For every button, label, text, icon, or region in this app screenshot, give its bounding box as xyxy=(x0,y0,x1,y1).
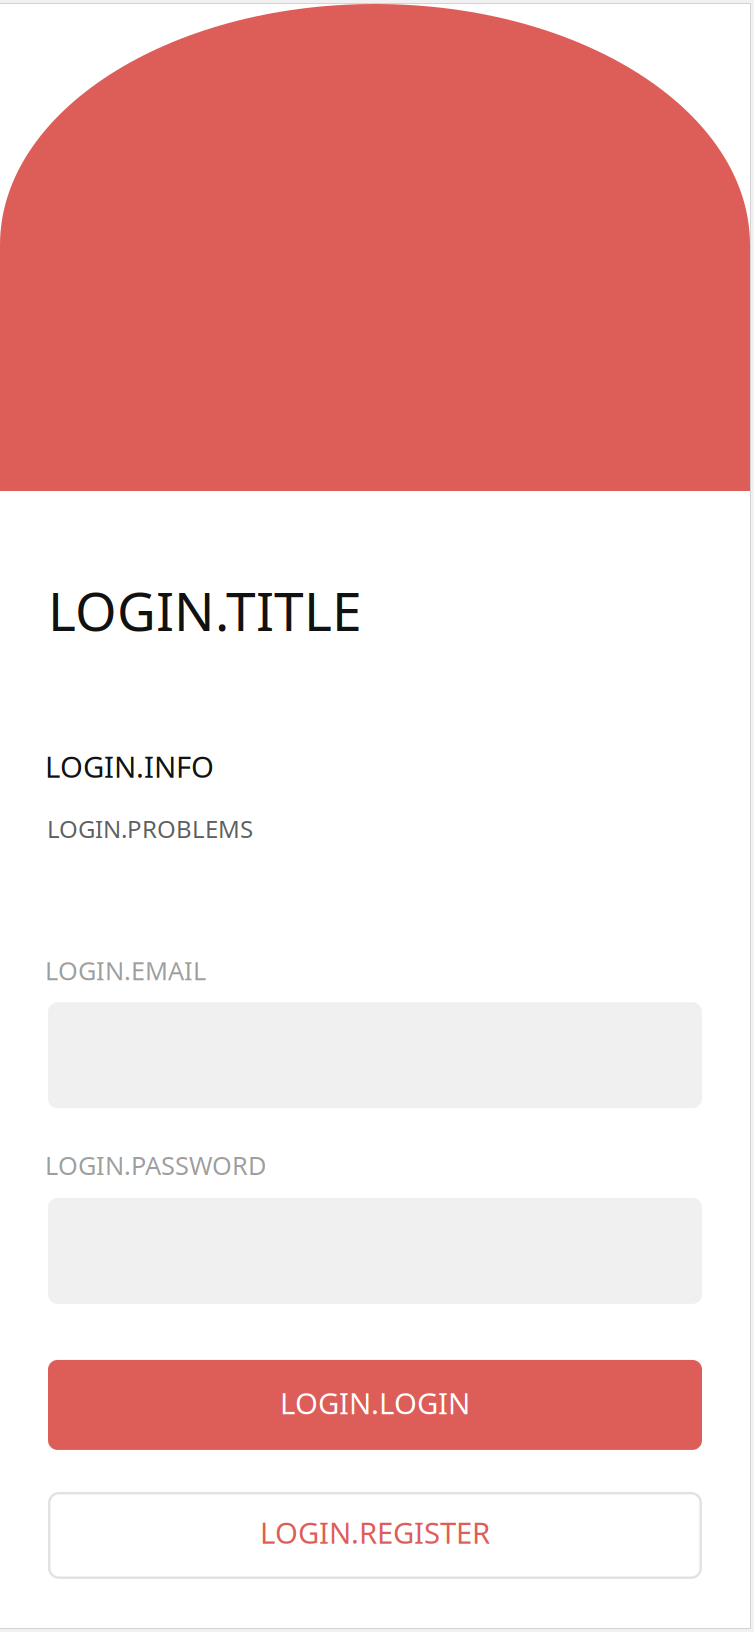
button[interactable]: LOGIN.LOGIN xyxy=(48,1360,702,1450)
staticText: LOGIN.PROBLEMS xyxy=(47,813,253,845)
staticText: LOGIN.TITLE xyxy=(48,575,362,646)
staticText: LOGIN.REGISTER xyxy=(260,1513,490,1552)
staticText: LOGIN.EMAIL xyxy=(45,954,206,987)
staticText: LOGIN.PASSWORD xyxy=(45,1148,266,1182)
staticText: LOGIN.INFO xyxy=(45,747,214,786)
staticText: LOGIN.LOGIN xyxy=(280,1383,470,1422)
button[interactable]: LOGIN.REGISTER xyxy=(48,1492,702,1579)
